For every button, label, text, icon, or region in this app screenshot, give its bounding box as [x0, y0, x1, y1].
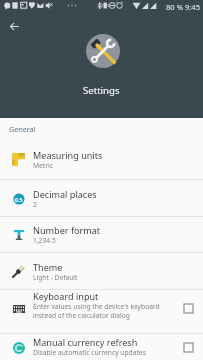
button[interactable]: Number format	[0, 217, 203, 252]
button[interactable]: Measuring units	[0, 139, 203, 179]
staticText: Disable automatic currency updates	[33, 348, 146, 357]
button[interactable]: Toggle Keyboard input	[180, 300, 197, 317]
staticText: Decimal places	[33, 188, 97, 200]
staticText: Enter values using the device's keyboard…	[33, 302, 160, 320]
staticText: Theme	[33, 261, 63, 273]
button[interactable]: Keyboard input	[0, 290, 203, 333]
button[interactable]: 0.5	[0, 180, 203, 216]
staticText: 80 % 9:45	[166, 2, 201, 12]
staticText: Keyboard input	[33, 290, 99, 302]
button[interactable]: Toggle Manual currency refresh	[180, 339, 197, 356]
staticText: Settings	[83, 84, 120, 97]
staticText: Metric	[33, 161, 53, 170]
staticText: Number format	[33, 224, 101, 236]
staticText: 2	[33, 200, 37, 209]
button[interactable]: Theme	[0, 253, 203, 289]
staticText: Light - Default	[33, 273, 78, 282]
staticText: General	[9, 124, 36, 134]
button[interactable]: Back	[3, 15, 25, 37]
staticText: Manual currency refresh	[33, 336, 138, 348]
staticText: 1,234.5	[33, 236, 56, 245]
staticText: 0.5	[15, 196, 23, 203]
staticText: Measuring units	[33, 149, 103, 161]
button[interactable]: Manual currency refresh	[0, 334, 203, 360]
